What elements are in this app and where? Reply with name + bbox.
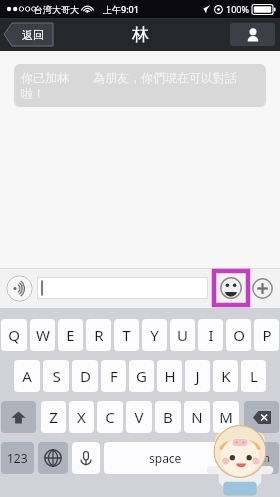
button[interactable]: J (185, 360, 210, 392)
button[interactable]: B (155, 401, 181, 433)
button[interactable]: T (114, 319, 139, 351)
button[interactable]: Z (41, 401, 66, 433)
staticText: 返回 (22, 28, 44, 42)
staticText: T (122, 325, 131, 345)
button[interactable]: M (213, 401, 239, 433)
staticText: W (36, 325, 50, 345)
staticText: H (164, 366, 176, 386)
button[interactable]: L (241, 360, 266, 392)
staticText: 林 (132, 24, 149, 45)
staticText: 你已加林 為朋友，你們現在可以對話啦！ (21, 69, 259, 102)
button[interactable]: Change keyboard (38, 442, 68, 474)
staticText: Y (150, 325, 159, 345)
button[interactable]: V (126, 401, 152, 433)
button[interactable]: G (129, 360, 154, 392)
staticText: S (52, 366, 61, 386)
button[interactable]: Y (142, 319, 167, 351)
button[interactable]: More options (250, 276, 274, 300)
button[interactable]: P (254, 319, 279, 351)
button[interactable]: H (157, 360, 182, 392)
button[interactable]: O (226, 319, 251, 351)
button[interactable]: U (170, 319, 195, 351)
staticText: space (149, 450, 182, 466)
staticText: Z (49, 407, 58, 427)
staticText: O (233, 325, 245, 345)
button[interactable]: Emoji (214, 271, 248, 305)
button[interactable]: F (101, 360, 126, 392)
staticText: B (163, 407, 173, 427)
staticText: E (66, 325, 75, 345)
button[interactable]: S (43, 360, 69, 392)
staticText: 上午9:01 (103, 3, 139, 15)
staticText: J (195, 366, 200, 386)
staticText: C (105, 407, 115, 427)
button[interactable]: W (30, 319, 55, 351)
staticText: D (80, 366, 91, 386)
button[interactable]: 返回 (4, 23, 56, 46)
staticText: return (240, 451, 270, 465)
staticText: A (22, 366, 32, 386)
button[interactable]: C (97, 401, 123, 433)
button[interactable]: R (86, 319, 111, 351)
button[interactable]: 123 (1, 442, 34, 474)
staticText: G (136, 366, 147, 386)
staticText: F (110, 366, 118, 386)
staticText: 台湾大哥大 (34, 4, 79, 15)
button[interactable]: I (198, 319, 223, 351)
staticText: N (191, 407, 203, 427)
staticText: 123 (7, 450, 28, 466)
staticText: Q (8, 325, 20, 345)
button[interactable] (37, 277, 208, 299)
button[interactable]: Shift (1, 401, 36, 433)
button[interactable]: Delete (244, 401, 279, 433)
button[interactable]: Profile (230, 23, 275, 46)
button[interactable]: Voice message (6, 275, 33, 302)
staticText: 100% (226, 3, 249, 15)
button[interactable]: A (14, 360, 40, 392)
button[interactable]: return (231, 442, 279, 474)
staticText: X (77, 407, 86, 427)
button[interactable]: space (104, 442, 227, 474)
button[interactable]: D (72, 360, 98, 392)
staticText: V (134, 407, 144, 427)
staticText: M (219, 407, 233, 427)
button[interactable]: Dictation (72, 442, 100, 474)
staticText: K (221, 366, 231, 386)
button[interactable]: N (184, 401, 210, 433)
button[interactable]: Q (1, 319, 27, 351)
staticText: L (250, 366, 258, 386)
button[interactable]: E (58, 319, 83, 351)
staticText: R (94, 325, 104, 345)
button[interactable]: X (69, 401, 94, 433)
staticText: U (177, 325, 188, 345)
button[interactable]: K (213, 360, 238, 392)
staticText: I (208, 325, 214, 345)
staticText: P (262, 325, 272, 345)
